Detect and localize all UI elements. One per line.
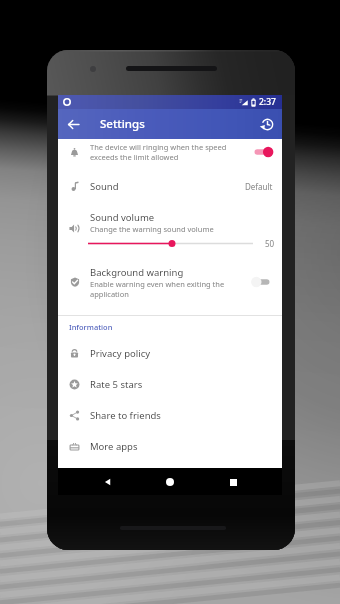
button[interactable]: Recents [220,469,246,495]
button[interactable]: Ring on speed limit, on [251,145,273,159]
staticText: 2:37 [259,96,276,108]
staticText: The device will ringing when the speed [90,142,227,152]
button[interactable]: Background warning [58,259,282,305]
button[interactable]: History [252,109,282,139]
staticText: Sound volume [90,211,155,224]
staticText: Sound [90,180,119,193]
button[interactable]: Back [58,109,88,139]
button[interactable]: Sound volume [58,202,282,259]
staticText: Background warning [90,266,184,279]
button[interactable]: Sound [58,171,282,202]
button[interactable]: Privacy policy [58,338,282,369]
button[interactable]: The device will ringing when the speed [58,133,282,171]
button[interactable]: Home [157,469,183,495]
staticText: Rate 5 stars [90,378,143,391]
staticText: Enable warning even when exiting the app… [90,279,225,299]
button[interactable]: Back [95,469,121,495]
staticText: Privacy policy [90,347,151,360]
button[interactable]: More apps [58,431,282,462]
button[interactable]: Share to friends [58,400,282,431]
button[interactable]: Rate 5 stars [58,369,282,400]
staticText: More apps [90,440,138,453]
button[interactable]: Background warning, off [251,275,273,289]
staticText: Information [69,322,113,332]
staticText: Default [245,181,273,192]
staticText: Settings [100,116,145,132]
staticText: Change the warning sound volume [90,224,214,234]
staticText: exceeds the limit allowed [90,152,179,162]
staticText: Share to friends [90,409,161,422]
staticText: 50 [265,238,275,249]
